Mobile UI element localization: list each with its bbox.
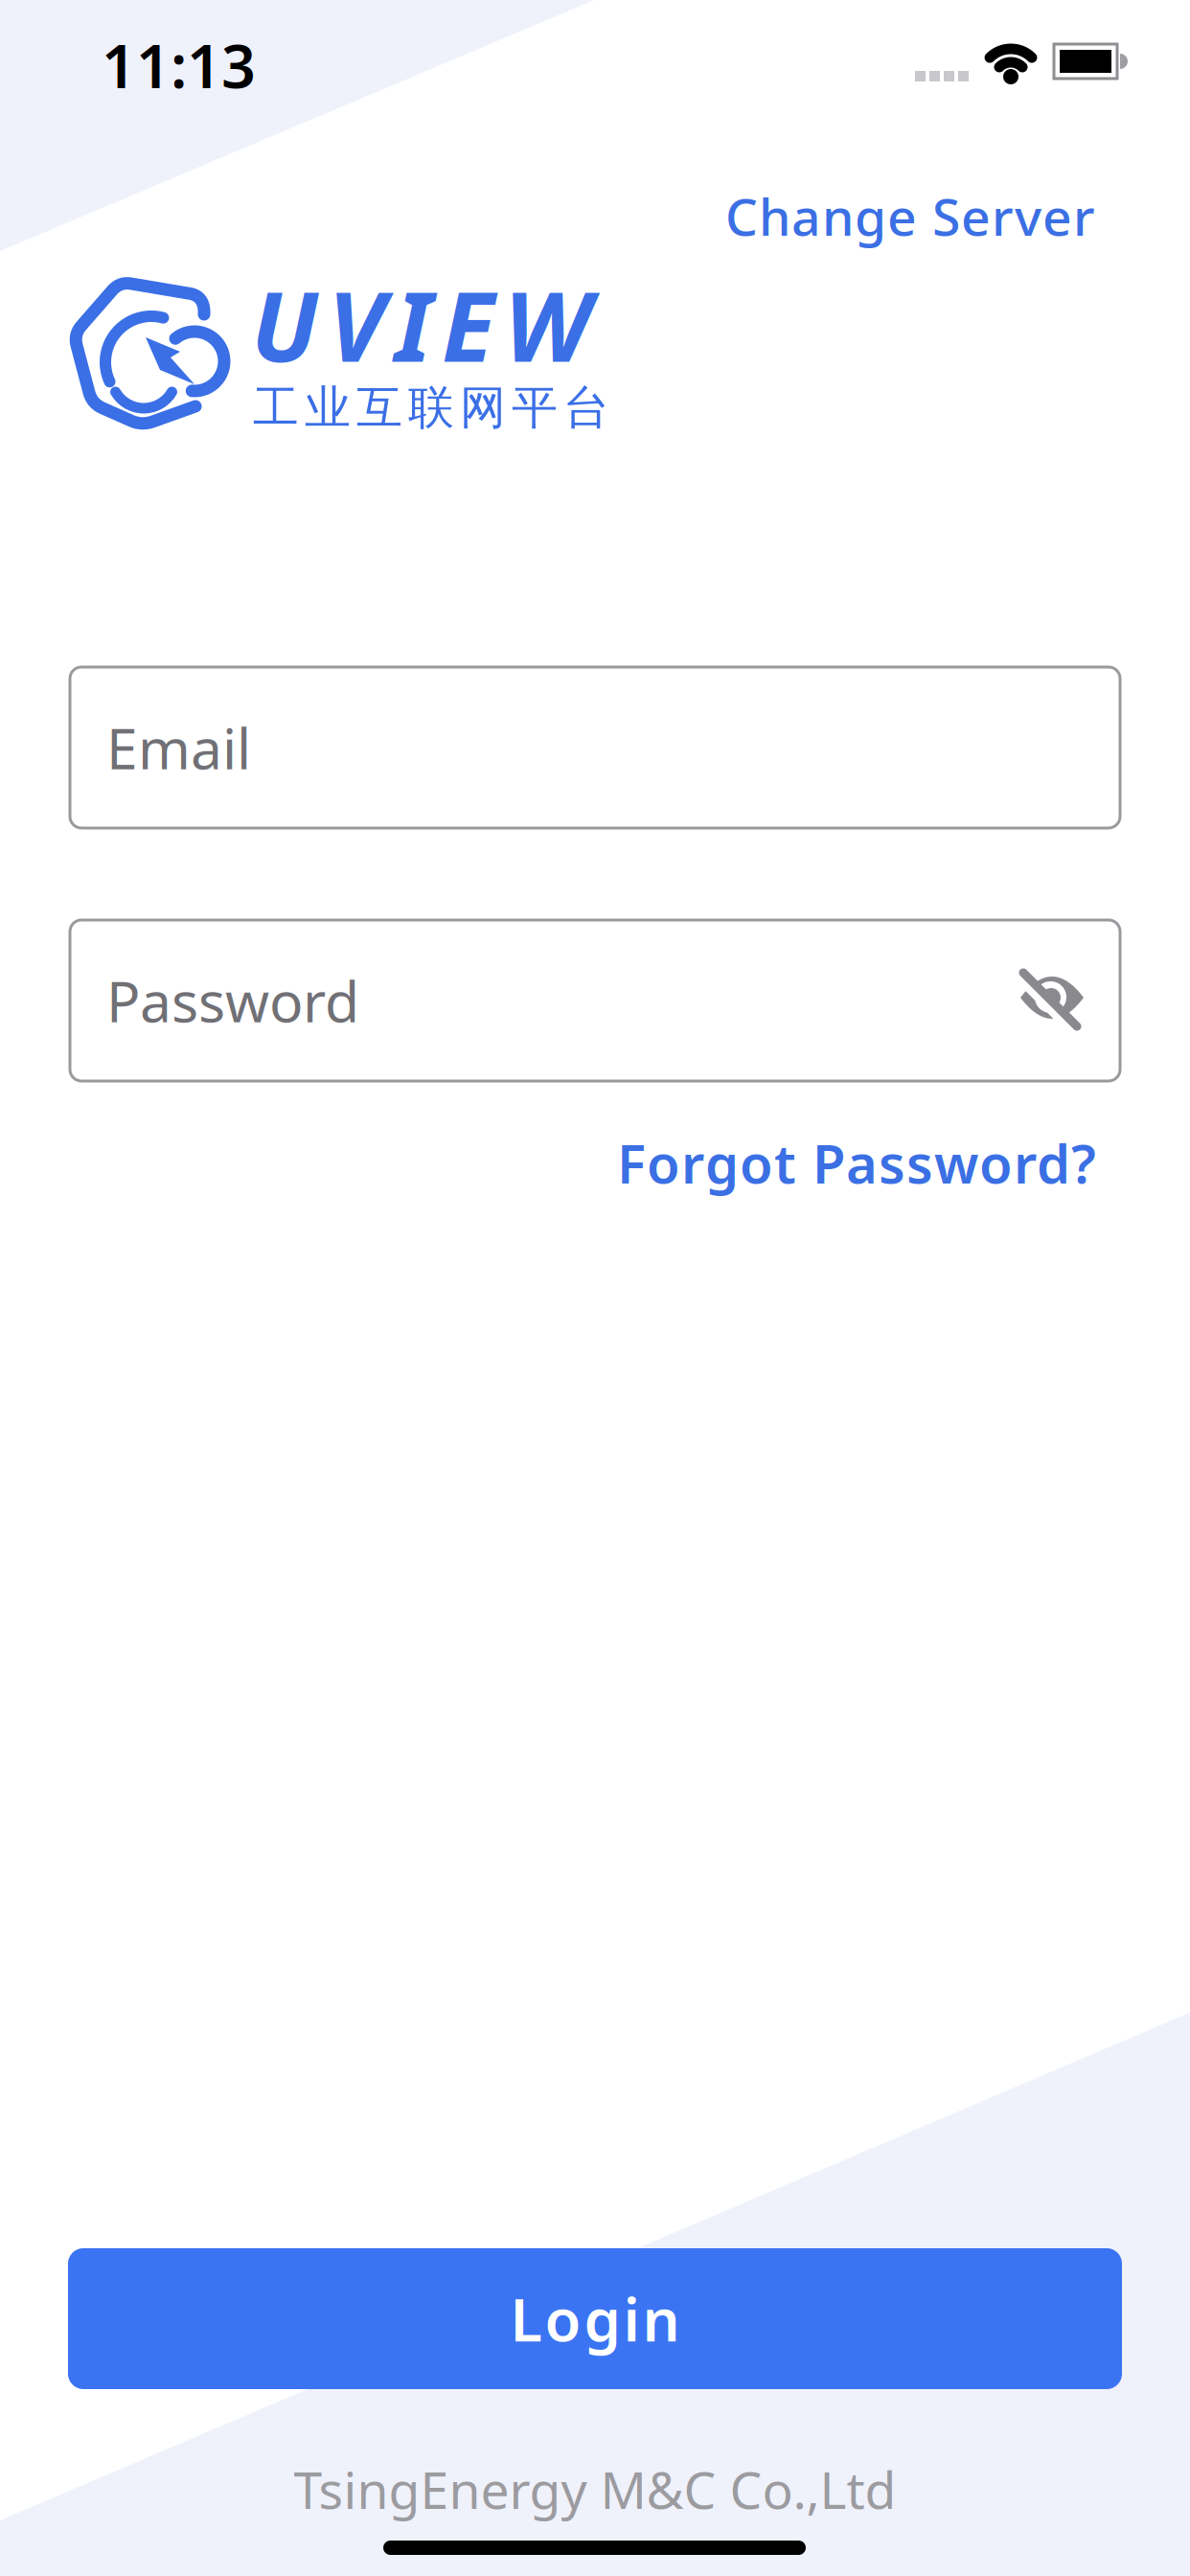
button[interactable]: Email [70,667,1120,828]
button[interactable]: Forgot Password? [617,1127,1096,1198]
staticText: 工业互联网平台 [253,379,609,436]
staticText: Change Server [725,182,1095,250]
button[interactable]: Show password [1018,968,1086,1029]
staticText: 11:13 [102,25,256,105]
staticText: TsingEnergy M&C Co.,Ltd [294,2455,896,2523]
button[interactable]: Login [68,2248,1122,2389]
staticText: UVIEW [251,260,591,389]
staticText: Login [510,2280,680,2358]
staticText: Password [106,963,359,1038]
button[interactable]: Password [70,920,1120,1081]
staticText: Forgot Password? [617,1127,1096,1198]
button[interactable]: Change Server [725,182,1095,250]
staticText: Email [106,710,251,785]
